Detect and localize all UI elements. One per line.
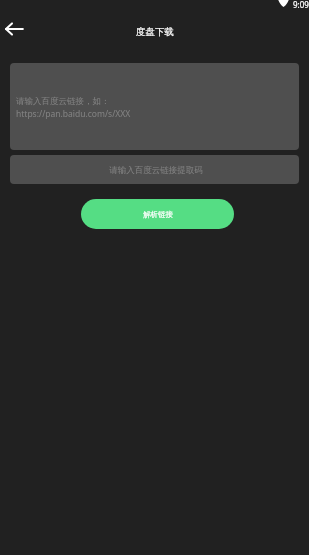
staticText: 9:09	[293, 0, 309, 10]
button[interactable]: 解析链接	[81, 199, 234, 229]
button[interactable]: 请输入百度云链接，如：	[10, 63, 299, 150]
button[interactable]: Back	[0, 15, 28, 43]
staticText: 请输入百度云链接，如：	[16, 96, 110, 107]
staticText: https://pan.baidu.com/s/XXX	[16, 108, 131, 120]
button[interactable]: 请输入百度云链接提取码	[10, 155, 299, 184]
staticText: 请输入百度云链接提取码	[109, 165, 203, 176]
staticText: 解析链接	[143, 210, 173, 219]
staticText: 度盘下载	[136, 26, 174, 38]
